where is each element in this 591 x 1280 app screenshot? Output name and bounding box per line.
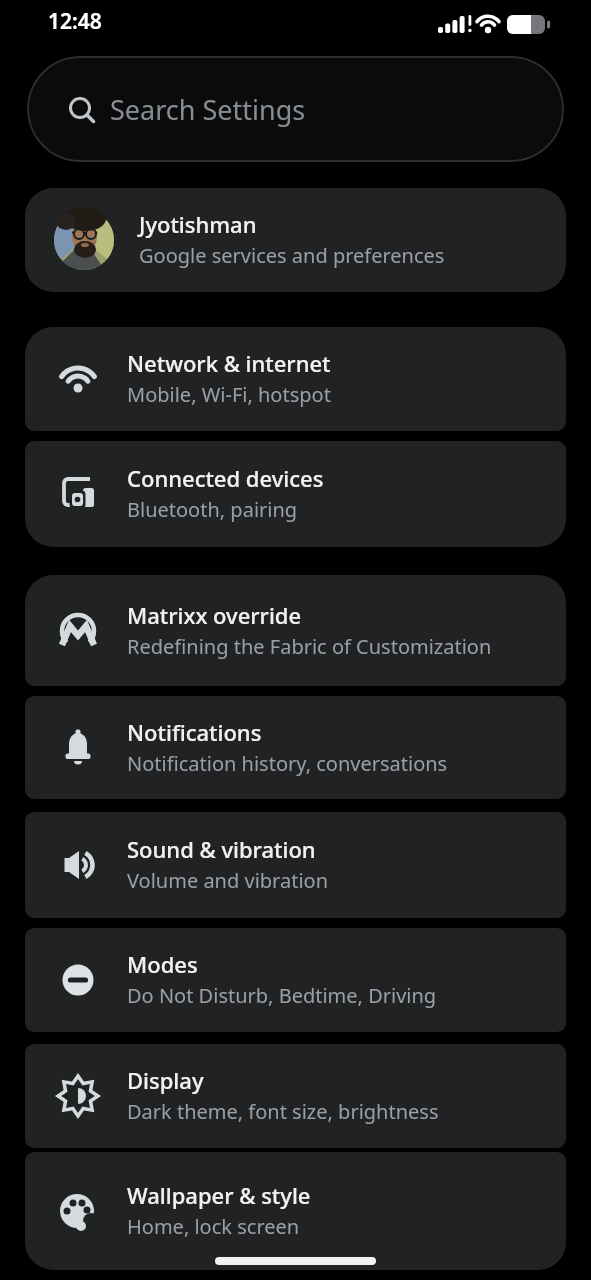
- staticText: Connected devices: [127, 463, 324, 493]
- staticText: Volume and vibration: [127, 867, 329, 894]
- button[interactable]: Jyotishman: [25, 188, 566, 292]
- staticText: Modes: [127, 949, 198, 979]
- button[interactable]: Sound & vibration: [25, 812, 566, 918]
- staticText: Bluetooth, pairing: [127, 496, 298, 523]
- staticText: Mobile, Wi-Fi, hotspot: [127, 381, 331, 408]
- staticText: Jyotishman: [139, 209, 257, 239]
- staticText: Network & internet: [127, 348, 331, 378]
- button[interactable]: Wallpaper & style: [25, 1152, 566, 1270]
- staticText: Search Settings: [110, 91, 306, 128]
- button[interactable]: Matrixx override: [25, 575, 566, 686]
- staticText: Matrixx override: [127, 600, 302, 630]
- button[interactable]: Connected devices: [25, 441, 566, 547]
- staticText: Dark theme, font size, brightness: [127, 1098, 439, 1125]
- staticText: Notifications: [127, 717, 262, 747]
- button[interactable]: Network & internet: [25, 327, 566, 431]
- button[interactable]: Display: [25, 1044, 566, 1148]
- staticText: Display: [127, 1065, 204, 1095]
- staticText: Wallpaper & style: [127, 1180, 311, 1210]
- button[interactable]: Search Settings: [27, 56, 564, 162]
- staticText: Sound & vibration: [127, 834, 316, 864]
- button[interactable]: Notifications: [25, 696, 566, 799]
- staticText: Redefining the Fabric of Customization: [127, 633, 492, 660]
- staticText: Do Not Disturb, Bedtime, Driving: [127, 982, 437, 1009]
- staticText: Google services and preferences: [139, 242, 445, 269]
- button[interactable]: Modes: [25, 928, 566, 1032]
- staticText: 12:48: [48, 7, 102, 36]
- staticText: Notification history, conversations: [127, 750, 448, 777]
- staticText: Home, lock screen: [127, 1213, 300, 1240]
